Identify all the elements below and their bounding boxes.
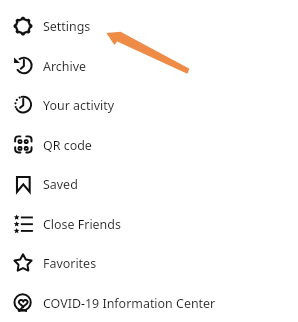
button[interactable] xyxy=(0,244,298,284)
staticText: Favorites xyxy=(43,255,97,272)
staticText: QR code xyxy=(43,137,92,154)
staticText: Saved xyxy=(43,176,78,193)
button[interactable] xyxy=(0,125,298,165)
staticText: COVID-19 Information Center xyxy=(43,295,216,312)
staticText: Your activity xyxy=(43,97,115,114)
button[interactable] xyxy=(0,204,298,244)
button[interactable] xyxy=(0,6,298,46)
staticText: Settings xyxy=(43,18,91,35)
button[interactable] xyxy=(0,283,298,322)
staticText: Close Friends xyxy=(43,216,121,233)
button[interactable] xyxy=(0,85,298,125)
button[interactable] xyxy=(0,164,298,204)
staticText: Archive xyxy=(43,58,87,75)
button[interactable] xyxy=(0,46,298,86)
